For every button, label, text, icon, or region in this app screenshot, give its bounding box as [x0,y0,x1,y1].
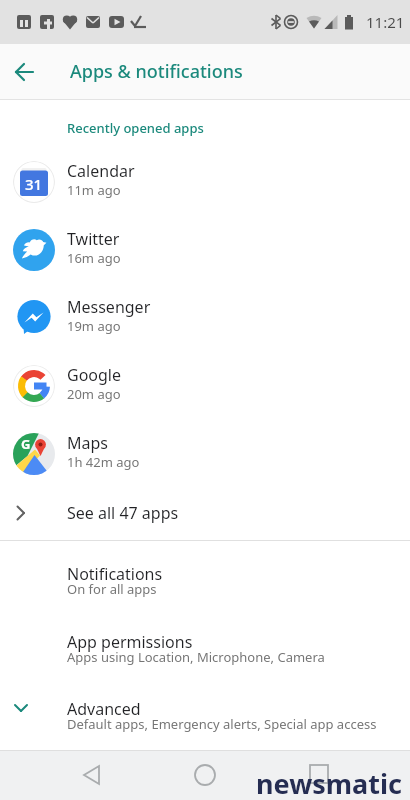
staticText: Messenger [67,296,151,318]
staticText: Apps using Location, Microphone, Camera [67,648,325,666]
button[interactable]: Google [0,349,410,417]
staticText: Recently opened apps [67,119,204,137]
staticText: 19m ago [67,317,121,335]
staticText: Apps & notifications [70,59,243,84]
staticText: 31 [25,174,43,194]
staticText: 1h 42m ago [67,453,140,471]
button[interactable]: Notifications [0,547,410,615]
button[interactable]: Messenger [0,281,410,349]
staticText: 11m ago [67,181,121,199]
button[interactable] [295,751,343,799]
button[interactable]: See all 47 apps [0,488,410,538]
staticText: G [21,435,31,453]
button[interactable] [2,48,48,96]
button[interactable]: Twitter [0,213,410,281]
staticText: Calendar [67,160,135,182]
staticText: See all 47 apps [67,502,179,524]
button[interactable]: G [0,417,410,485]
staticText: Twitter [67,228,120,250]
button[interactable]: Advanced [0,683,410,750]
staticText: Default apps, Emergency alerts, Special … [67,715,377,733]
staticText: 20m ago [67,385,121,403]
staticText: Maps [67,432,108,454]
staticText: On for all apps [67,580,157,598]
staticText: App permissions [67,631,193,653]
staticText: 11:21 [366,12,405,32]
staticText: newsmatic [256,765,403,800]
staticText: Notifications [67,563,163,585]
staticText: Advanced [67,698,141,720]
staticText: 16m ago [67,249,121,267]
staticText: Google [67,364,122,386]
button[interactable] [181,751,229,799]
button[interactable]: App permissions [0,615,410,683]
button[interactable] [68,751,116,799]
button[interactable]: 31 [0,145,410,213]
